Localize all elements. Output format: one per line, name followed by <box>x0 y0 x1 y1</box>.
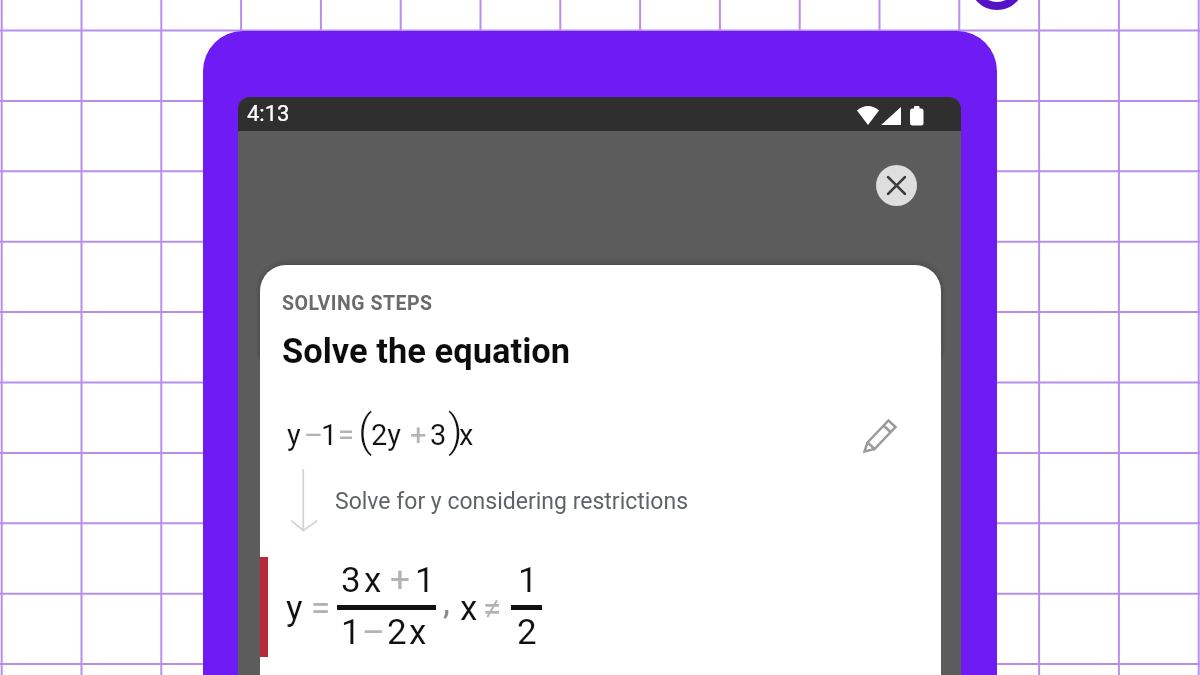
staticText: x <box>409 612 427 653</box>
button[interactable]: Edit <box>860 410 906 456</box>
button[interactable]: Close <box>876 165 917 206</box>
staticText: 1 <box>321 418 338 452</box>
staticText: x <box>364 560 382 601</box>
staticText: Solve for y considering restrictions <box>335 488 689 515</box>
staticText: 2 <box>387 612 407 653</box>
staticText: ( <box>358 404 373 457</box>
staticText: 1 <box>341 612 361 653</box>
staticText: + <box>390 560 410 601</box>
staticText: – <box>362 612 385 653</box>
staticText: 1 <box>518 560 538 601</box>
staticText: – <box>304 418 324 452</box>
staticText: = <box>338 418 354 452</box>
staticText: 2y <box>371 418 402 452</box>
staticText: x <box>459 418 474 452</box>
staticText: , <box>443 582 450 623</box>
button[interactable]: Solution step <box>260 552 941 662</box>
staticText: 4:13 <box>247 101 290 127</box>
staticText: 2 <box>517 612 537 653</box>
staticText: + <box>410 418 427 452</box>
staticText: = <box>311 588 331 629</box>
staticText: y <box>287 418 301 452</box>
staticText: 1 <box>415 560 435 601</box>
staticText: ≠ <box>483 589 502 628</box>
staticText: ) <box>448 404 463 457</box>
staticText: 3 <box>430 418 447 452</box>
staticText: x <box>460 588 478 629</box>
staticText: Solve the equation <box>282 331 571 371</box>
staticText: y <box>286 588 303 629</box>
staticText: SOLVING STEPS <box>282 292 433 315</box>
button[interactable]: Equation <box>260 400 941 470</box>
staticText: 3 <box>341 560 361 601</box>
